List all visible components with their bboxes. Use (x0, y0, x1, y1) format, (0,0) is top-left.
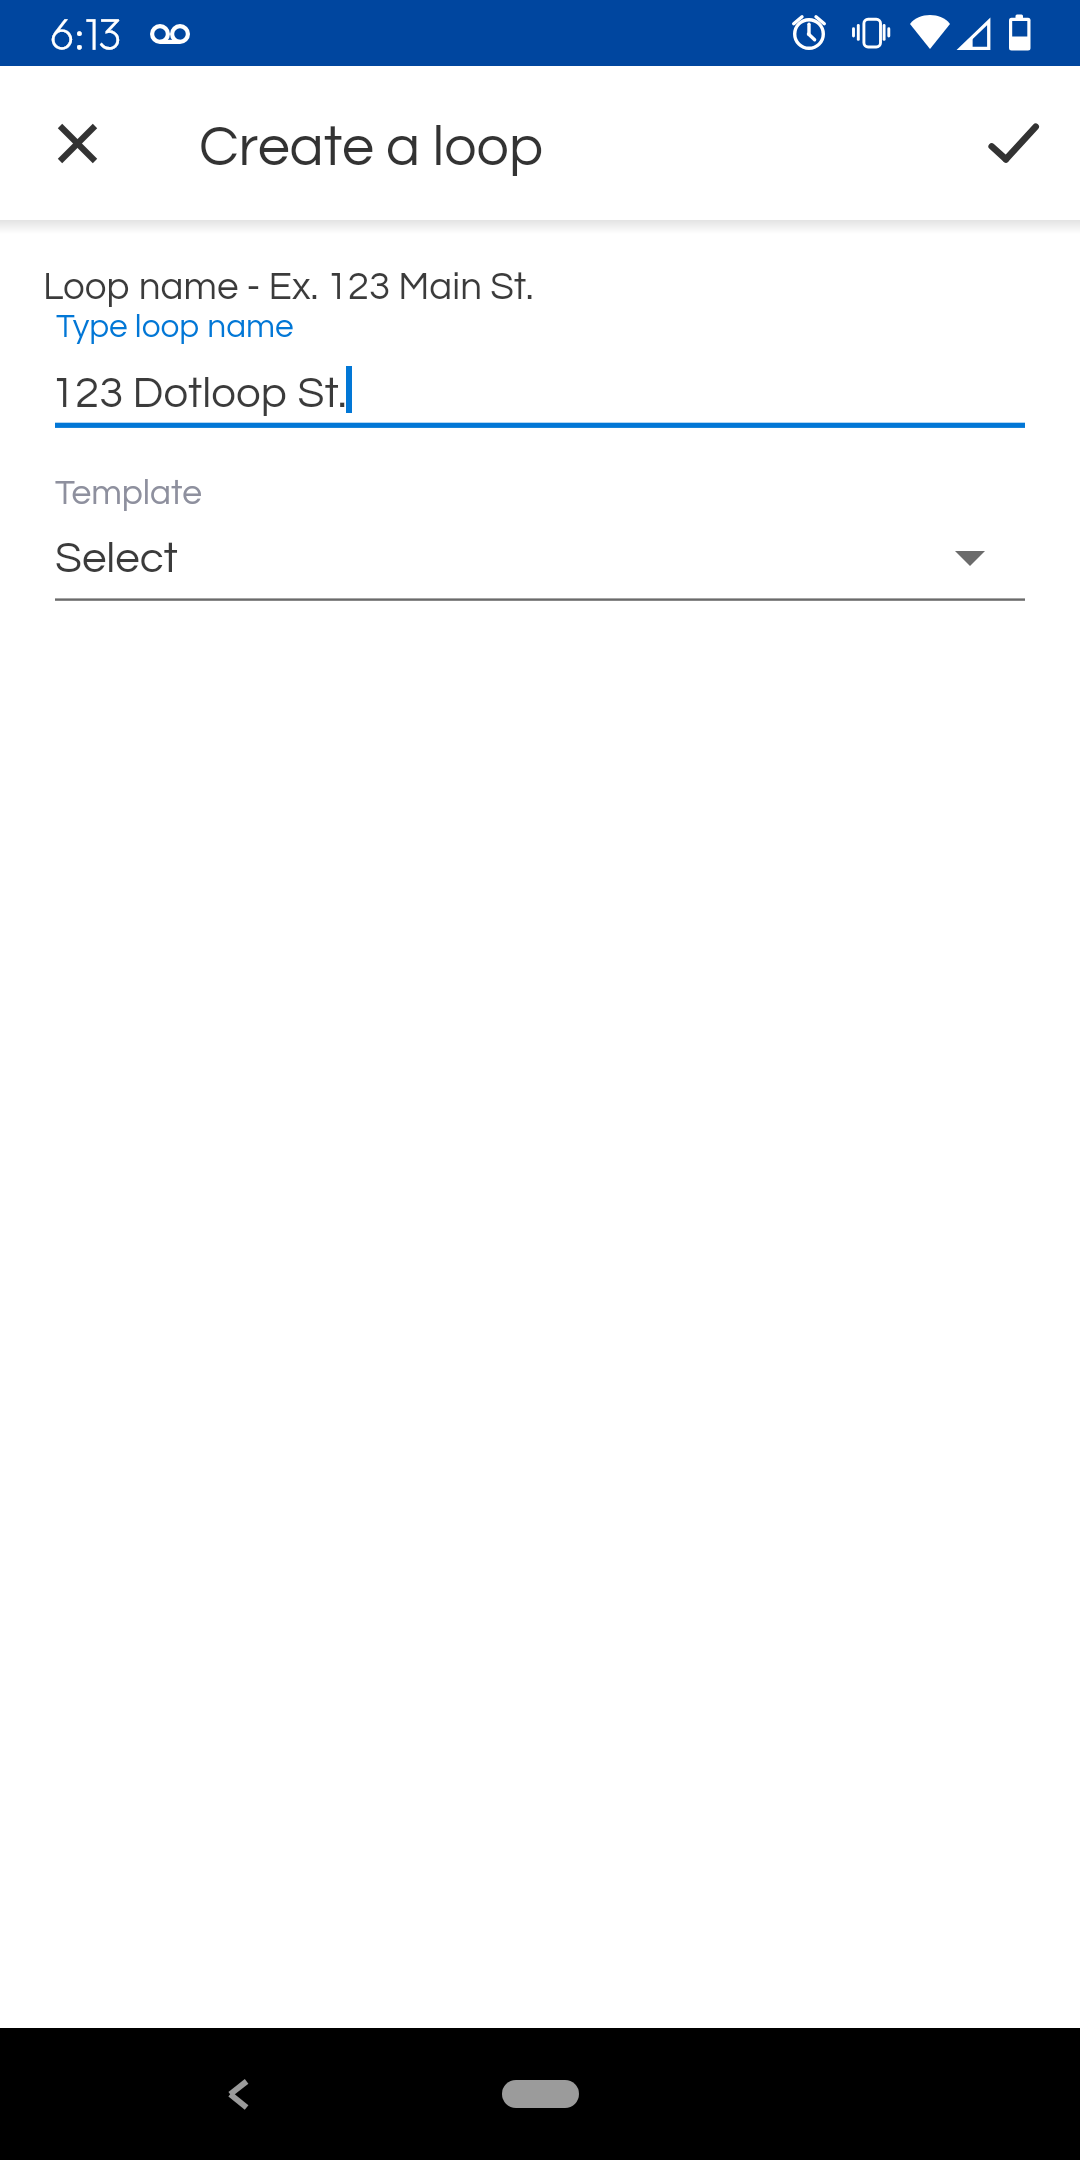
staticText: Type loop name (56, 310, 294, 344)
button[interactable]: Save (966, 95, 1062, 191)
staticText: Select (55, 536, 178, 581)
staticText: Template (55, 475, 202, 511)
staticText: 123 Dotloop St. (51, 371, 347, 416)
staticText: Create a loop (199, 118, 544, 177)
staticText: 6:13 (50, 7, 121, 60)
button[interactable]: Template dropdown (0, 520, 1080, 600)
button[interactable]: Home (502, 2080, 579, 2108)
button[interactable]: Close (29, 95, 125, 191)
button[interactable]: Back (184, 2039, 294, 2149)
staticText: Loop name - Ex. 123 Main St. (43, 267, 534, 307)
